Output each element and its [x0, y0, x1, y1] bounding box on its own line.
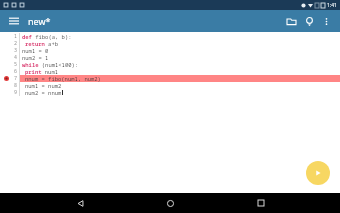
staticText: 9 [14, 89, 18, 96]
staticText: num1 = num2 [25, 82, 62, 89]
button[interactable]: Home [159, 193, 181, 213]
button[interactable]: More options [318, 12, 334, 30]
button[interactable]: def fibo(a, b): [20, 33, 340, 40]
button[interactable]: num2 = nnum [20, 89, 340, 96]
staticText: num2 = 1 [22, 54, 49, 61]
button[interactable]: Open navigation drawer [6, 13, 22, 29]
staticText: new* [28, 15, 51, 27]
button[interactable]: num2 = 1 [20, 54, 340, 61]
button[interactable]: Open file [282, 12, 300, 30]
staticText: def fibo(a, b): [22, 33, 72, 40]
staticText: 7 [14, 75, 18, 82]
staticText: nnum = fibo(num1, num2) [25, 75, 101, 82]
staticText: while (num1<100): [22, 61, 79, 68]
staticText: return a+b [25, 40, 59, 47]
staticText: 6 [14, 68, 18, 75]
button[interactable]: Recent apps [250, 193, 272, 213]
button[interactable]: while (num1<100): [20, 61, 340, 68]
staticText: 1:41 [327, 2, 337, 9]
button[interactable]: return a+b [20, 40, 340, 47]
staticText: 4 [14, 54, 18, 61]
button[interactable]: Hints [300, 12, 318, 30]
staticText: print num1 [25, 68, 59, 75]
staticText: 8 [14, 82, 18, 89]
button[interactable]: num1 = 0 [20, 47, 340, 54]
button[interactable]: Run [306, 161, 330, 185]
button[interactable]: nnum = fibo(num1, num2) [20, 75, 340, 82]
staticText: 3 [14, 47, 18, 54]
button[interactable]: print num1 [20, 68, 340, 75]
button[interactable]: num1 = num2 [20, 82, 340, 89]
staticText: num1 = 0 [22, 47, 49, 54]
button[interactable]: Back [69, 193, 91, 213]
staticText: num2 = nnum [25, 89, 62, 96]
staticText: 2 [14, 40, 18, 47]
staticText: 5 [14, 61, 18, 68]
staticText: 1 [14, 33, 18, 40]
